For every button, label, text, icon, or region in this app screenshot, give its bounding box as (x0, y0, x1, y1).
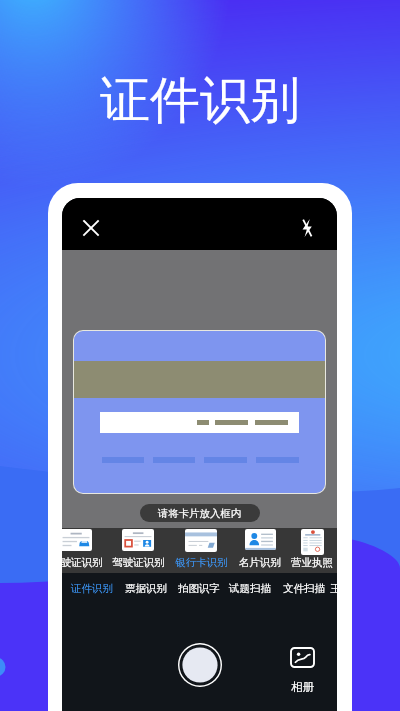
staticText: 营业执照 (291, 556, 333, 569)
staticText: 请将卡片放入框内 (158, 507, 242, 520)
staticText: 相册 (291, 680, 314, 694)
button[interactable]: 票据识别 (119, 573, 161, 603)
button[interactable]: 请将卡片放入框内 (140, 504, 260, 522)
button[interactable]: 相册 (291, 648, 314, 694)
staticText: 试题扫描 (229, 582, 271, 595)
staticText: 银行卡识别 (175, 556, 228, 569)
button[interactable]: 试题扫描 (223, 573, 265, 603)
button[interactable]: Take photo (178, 643, 222, 687)
button[interactable]: 文件扫描 (277, 573, 319, 603)
button[interactable]: Toggle flash (294, 215, 320, 241)
staticText: 王 (330, 582, 337, 595)
button[interactable]: 拍图识字 (172, 573, 214, 603)
staticText: 证件识别 (71, 582, 113, 595)
staticText: 驾驶证识别 (112, 556, 165, 569)
staticText: 票据识别 (125, 582, 167, 595)
staticText: 拍图识字 (178, 582, 220, 595)
button[interactable]: 营业执照 (285, 528, 337, 573)
staticText: 证件识别 (100, 69, 300, 132)
button[interactable]: 证件识别 (65, 573, 107, 603)
staticText: 名片识别 (239, 556, 281, 569)
button[interactable]: 王 (324, 573, 335, 603)
button[interactable]: 银行卡识别 (169, 528, 233, 573)
staticText: 文件扫描 (283, 582, 325, 595)
button[interactable]: 名片识别 (233, 528, 287, 573)
button[interactable]: Close (78, 215, 104, 241)
staticText: 行驶证识别 (62, 556, 103, 569)
button[interactable]: 行驶证识别 (62, 528, 108, 573)
button[interactable]: 驾驶证识别 (106, 528, 170, 573)
